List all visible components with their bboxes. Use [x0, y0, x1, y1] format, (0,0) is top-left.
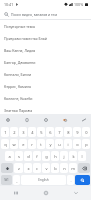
button[interactable]: 3: [19, 127, 27, 137]
staticText: Коллинз, Кьялби: [4, 96, 33, 101]
button[interactable]: g: [42, 151, 50, 161]
staticText: w: [12, 142, 16, 147]
button[interactable]: Back: [61, 186, 91, 200]
staticText: 3: [22, 130, 25, 135]
button[interactable]: s: [15, 151, 23, 161]
button[interactable]: 9: [73, 127, 81, 137]
staticText: y: [49, 142, 52, 147]
staticText: b: [54, 166, 57, 171]
button[interactable]: Коннали, Билли: [0, 68, 91, 80]
button[interactable]: Shift: [1, 163, 13, 173]
button[interactable]: .: [67, 175, 74, 185]
button[interactable]: Коллинз, Кьялби: [0, 92, 91, 104]
button[interactable]: m: [69, 163, 77, 173]
button[interactable]: o: [73, 139, 81, 149]
staticText: u: [58, 142, 61, 147]
button[interactable]: Бангор, Джованни: [0, 56, 91, 68]
button[interactable]: 1: [1, 127, 9, 137]
button[interactable]: l: [78, 151, 86, 161]
button[interactable]: b: [51, 163, 59, 173]
button[interactable]: Keyboard settings: [3, 114, 12, 126]
button[interactable]: Recents: [0, 186, 31, 200]
staticText: 8: [67, 130, 70, 135]
staticText: s: [18, 154, 20, 159]
button[interactable]: 0: [82, 127, 90, 137]
staticText: Кэррис, Камила: [4, 84, 31, 89]
staticText: 7: [58, 130, 61, 135]
staticText: d: [27, 154, 30, 159]
staticText: Знатная Парижа: [4, 108, 33, 113]
button[interactable]: y: [46, 139, 54, 149]
staticText: 9: [76, 130, 79, 135]
staticText: 6: [49, 130, 52, 135]
button[interactable]: z: [14, 163, 23, 173]
button[interactable]: 8: [64, 127, 72, 137]
staticText: i: [67, 142, 69, 147]
button[interactable]: 4: [28, 127, 36, 137]
button[interactable]: Home: [31, 186, 61, 200]
button[interactable]: Handwriting: [79, 114, 88, 126]
staticText: .: [70, 178, 72, 183]
button[interactable]: h: [51, 151, 59, 161]
staticText: Поиск видео, каналов и тем: [11, 12, 58, 17]
button[interactable]: r: [28, 139, 36, 149]
staticText: o: [76, 142, 79, 147]
staticText: 5: [40, 130, 43, 135]
button[interactable]: Знатная Парижа: [0, 104, 91, 116]
button[interactable]: w: [10, 139, 18, 149]
button[interactable]: English: [21, 175, 66, 185]
staticText: j: [63, 154, 65, 159]
staticText: Коннали, Билли: [4, 72, 32, 77]
button[interactable]: Популярные темы: [0, 20, 91, 32]
staticText: n: [63, 166, 66, 171]
button[interactable]: !#1: [1, 175, 12, 185]
staticText: a: [8, 154, 11, 159]
button[interactable]: u: [55, 139, 63, 149]
button[interactable]: Кэррис, Камила: [0, 80, 91, 92]
button[interactable]: 2: [10, 127, 18, 137]
button[interactable]: Clipboard: [22, 114, 31, 126]
button[interactable]: n: [60, 163, 68, 173]
staticText: x: [27, 166, 30, 171]
button[interactable]: Backspace: [78, 163, 90, 173]
button[interactable]: x: [24, 163, 32, 173]
button[interactable]: p: [82, 139, 90, 149]
staticText: p: [85, 142, 88, 147]
staticText: 2: [13, 130, 16, 135]
staticText: English: [38, 178, 49, 182]
staticText: l: [81, 154, 83, 159]
staticText: 100%: [74, 2, 84, 7]
staticText: v: [45, 166, 48, 171]
button[interactable]: c: [33, 163, 41, 173]
staticText: g: [45, 154, 48, 159]
button[interactable]: d: [24, 151, 32, 161]
button[interactable]: a: [5, 151, 14, 161]
staticText: m: [71, 166, 75, 171]
button[interactable]: Stickers: [60, 114, 69, 126]
button[interactable]: Emoji: [41, 114, 50, 126]
button[interactable]: v: [42, 163, 50, 173]
button[interactable]: 6: [46, 127, 54, 137]
button[interactable]: Search: [75, 175, 90, 185]
staticText: 4: [31, 130, 34, 135]
staticText: 0: [85, 130, 88, 135]
button[interactable]: e: [19, 139, 27, 149]
button[interactable]: i: [64, 139, 72, 149]
staticText: 10:41: [4, 2, 14, 7]
staticText: Бангор, Джованни: [4, 60, 36, 65]
button[interactable]: j: [60, 151, 68, 161]
button[interactable]: Призраки поместья Блай: [0, 32, 91, 44]
button[interactable]: k: [69, 151, 77, 161]
button[interactable]: Ваш Каппа, Лидия: [0, 44, 91, 56]
button[interactable]: 5: [37, 127, 45, 137]
button[interactable]: Поиск видео, каналов и тем: [0, 9, 91, 19]
button[interactable]: 7: [55, 127, 63, 137]
staticText: k: [72, 154, 75, 159]
staticText: z: [18, 166, 20, 171]
button[interactable]: t: [37, 139, 45, 149]
staticText: 1: [4, 130, 7, 135]
staticText: Ваш Каппа, Лидия: [4, 48, 36, 53]
button[interactable]: f: [33, 151, 41, 161]
button[interactable]: ,: [13, 175, 20, 185]
button[interactable]: q: [1, 139, 9, 149]
